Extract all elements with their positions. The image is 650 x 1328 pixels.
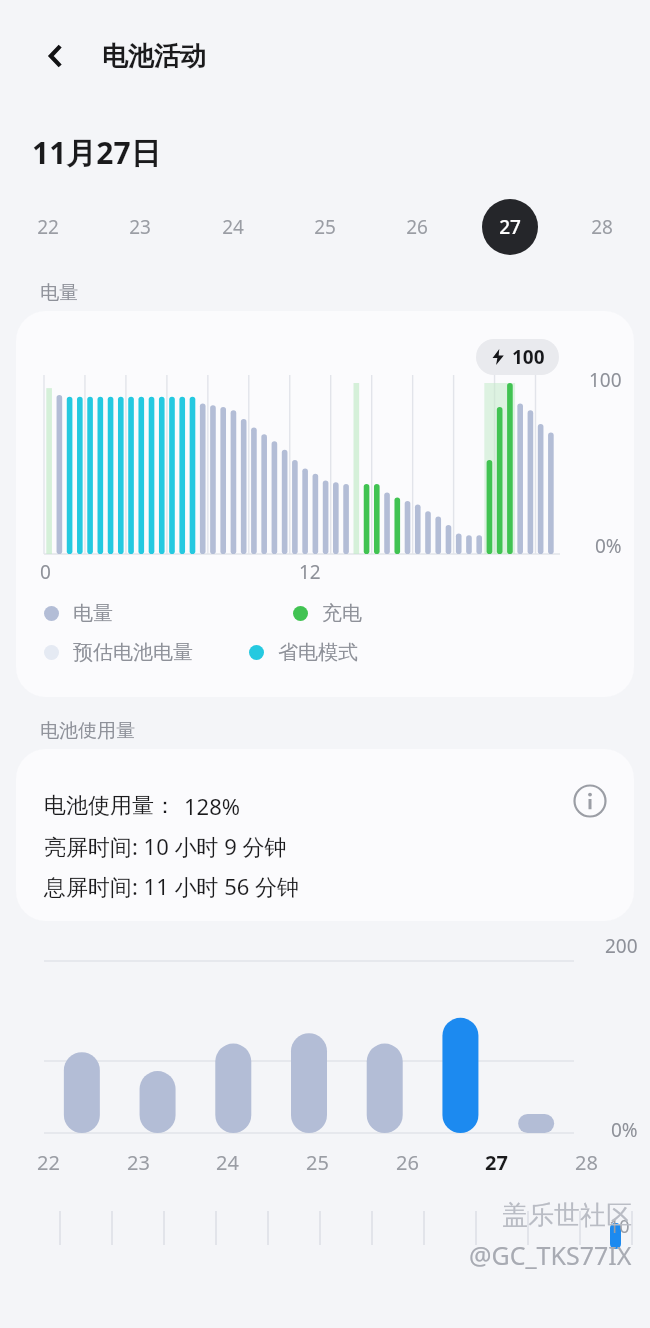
- staticText: 27: [485, 1149, 508, 1176]
- staticText: 亮屏时间: 10 小时 9 分钟: [44, 831, 287, 861]
- button[interactable]: 26: [389, 199, 445, 255]
- button[interactable]: 24: [205, 199, 261, 255]
- button[interactable]: 26: [381, 1149, 433, 1176]
- button[interactable]: 25: [297, 199, 353, 255]
- staticText: 27: [499, 214, 521, 240]
- staticText: 盖乐世社区: [502, 1199, 632, 1232]
- staticText: 24: [222, 214, 244, 240]
- staticText: 22: [37, 1149, 60, 1176]
- button[interactable]: Info: [568, 779, 612, 823]
- staticText: 25: [314, 214, 336, 240]
- button[interactable]: 25: [291, 1149, 343, 1176]
- button[interactable]: 电池使用量：: [16, 749, 634, 921]
- button[interactable]: 28: [560, 1149, 612, 1176]
- button[interactable]: 27: [482, 199, 538, 255]
- button[interactable]: 22: [20, 199, 76, 255]
- button[interactable]: 预估电池电量: [44, 640, 193, 665]
- staticText: 28: [591, 214, 613, 240]
- staticText: @GC_TKS77IX: [469, 1238, 632, 1272]
- staticText: 200: [605, 933, 638, 959]
- staticText: 22: [37, 214, 59, 240]
- staticText: 0: [40, 559, 51, 585]
- staticText: 26: [406, 214, 428, 240]
- staticText: 充电: [322, 601, 362, 626]
- button[interactable]: 27: [470, 1149, 522, 1176]
- button[interactable]: 充电: [293, 601, 362, 626]
- staticText: 电池使用量：: [44, 792, 176, 820]
- staticText: 12: [299, 559, 321, 585]
- button[interactable]: 电量: [44, 601, 113, 626]
- staticText: 0%: [611, 1117, 638, 1143]
- staticText: 0%: [595, 533, 622, 559]
- staticText: 24: [216, 1149, 239, 1176]
- staticText: 26: [396, 1149, 419, 1176]
- button[interactable]: 23: [112, 199, 168, 255]
- staticText: 23: [127, 1149, 150, 1176]
- staticText: 100: [512, 344, 545, 370]
- button[interactable]: 省电模式: [249, 640, 358, 665]
- staticText: 电池使用量: [40, 719, 135, 743]
- staticText: 电量: [73, 601, 113, 626]
- staticText: 100: [589, 367, 622, 393]
- staticText: 电池活动: [102, 40, 206, 73]
- button[interactable]: 24: [201, 1149, 253, 1176]
- staticText: 128%: [184, 791, 241, 821]
- staticText: 预估电池电量: [73, 640, 193, 665]
- staticText: 11月27日: [32, 132, 161, 173]
- button[interactable]: 22: [22, 1149, 74, 1176]
- staticText: 省电模式: [278, 640, 358, 665]
- staticText: 25: [306, 1149, 329, 1176]
- staticText: 23: [129, 214, 151, 240]
- staticText: 息屏时间: 11 小时 56 分钟: [44, 871, 300, 901]
- button[interactable]: 28: [574, 199, 630, 255]
- button[interactable]: 100: [16, 311, 634, 697]
- button[interactable]: Back: [32, 32, 80, 80]
- staticText: 电量: [40, 281, 78, 305]
- staticText: 10: [609, 1214, 630, 1239]
- button[interactable]: 23: [112, 1149, 164, 1176]
- staticText: 28: [575, 1149, 598, 1176]
